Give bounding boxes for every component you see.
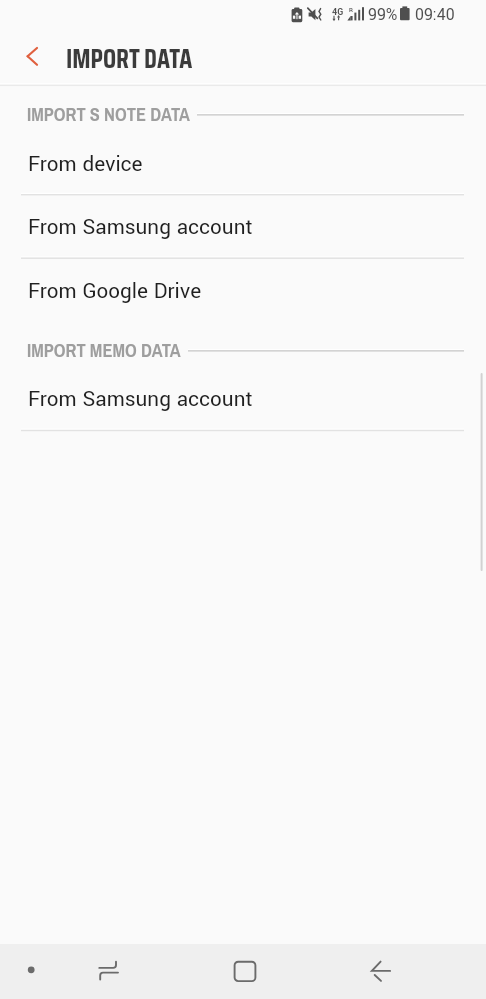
button[interactable]: From Google Drive: [0, 259, 486, 323]
staticText: From Samsung account: [28, 212, 253, 242]
button[interactable]: Recent apps: [84, 946, 132, 994]
button[interactable]: Navigate up: [4, 32, 53, 81]
staticText: 09:40: [415, 3, 455, 26]
button[interactable]: Back: [357, 946, 405, 994]
button[interactable]: From device: [0, 132, 486, 196]
staticText: From Samsung account: [28, 384, 253, 414]
button[interactable]: Menu: [7, 946, 55, 994]
staticText: From Google Drive: [28, 276, 202, 306]
staticText: IMPORT MEMO DATA: [27, 334, 181, 368]
staticText: IMPORT S NOTE DATA: [27, 98, 190, 132]
staticText: R: [349, 6, 353, 15]
button[interactable]: Home: [220, 946, 268, 994]
button[interactable]: From Samsung account: [0, 367, 486, 431]
button[interactable]: From Samsung account: [0, 195, 486, 259]
staticText: IMPORT DATA: [66, 38, 193, 79]
staticText: 4G: [332, 6, 344, 19]
staticText: 99%: [368, 3, 398, 26]
staticText: From device: [28, 149, 143, 179]
